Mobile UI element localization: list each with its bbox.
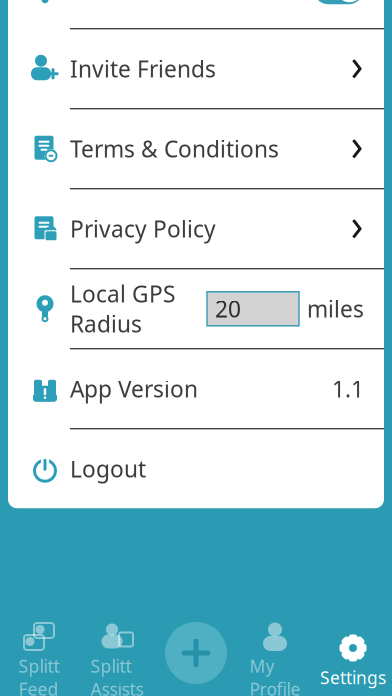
- button[interactable]: Settings: [314, 628, 392, 694]
- staticText: miles: [307, 294, 364, 324]
- staticText: Splitt Assists: [90, 654, 143, 696]
- button[interactable]: Splitt Feed: [0, 628, 78, 694]
- button[interactable]: My Profile: [236, 628, 314, 694]
- button[interactable]: Terms & Conditions: [8, 109, 384, 189]
- staticText: Privacy Policy: [70, 214, 216, 244]
- staticText: Local GPS Radius: [70, 279, 175, 339]
- button[interactable]: Local GPS Radius: [8, 269, 384, 349]
- button[interactable]: Add: [161, 618, 231, 688]
- staticText: Settings: [320, 666, 386, 689]
- button[interactable]: Splitt Assists: [78, 628, 156, 694]
- staticText: 20: [215, 294, 241, 324]
- button[interactable]: Invite Friends: [8, 29, 384, 109]
- button[interactable]: App Version: [8, 349, 384, 429]
- staticText: 1.1: [332, 374, 364, 404]
- staticText: Logout: [70, 454, 146, 484]
- staticText: Terms & Conditions: [70, 134, 279, 164]
- button[interactable]: Push Notifications: [8, 0, 384, 29]
- button[interactable]: Logout: [8, 429, 384, 508]
- staticText: App Version: [70, 374, 198, 404]
- button[interactable]: Privacy Policy: [8, 189, 384, 269]
- staticText: Invite Friends: [70, 54, 216, 84]
- staticText: Splitt Feed: [18, 654, 59, 696]
- staticText: My Profile: [249, 654, 300, 696]
